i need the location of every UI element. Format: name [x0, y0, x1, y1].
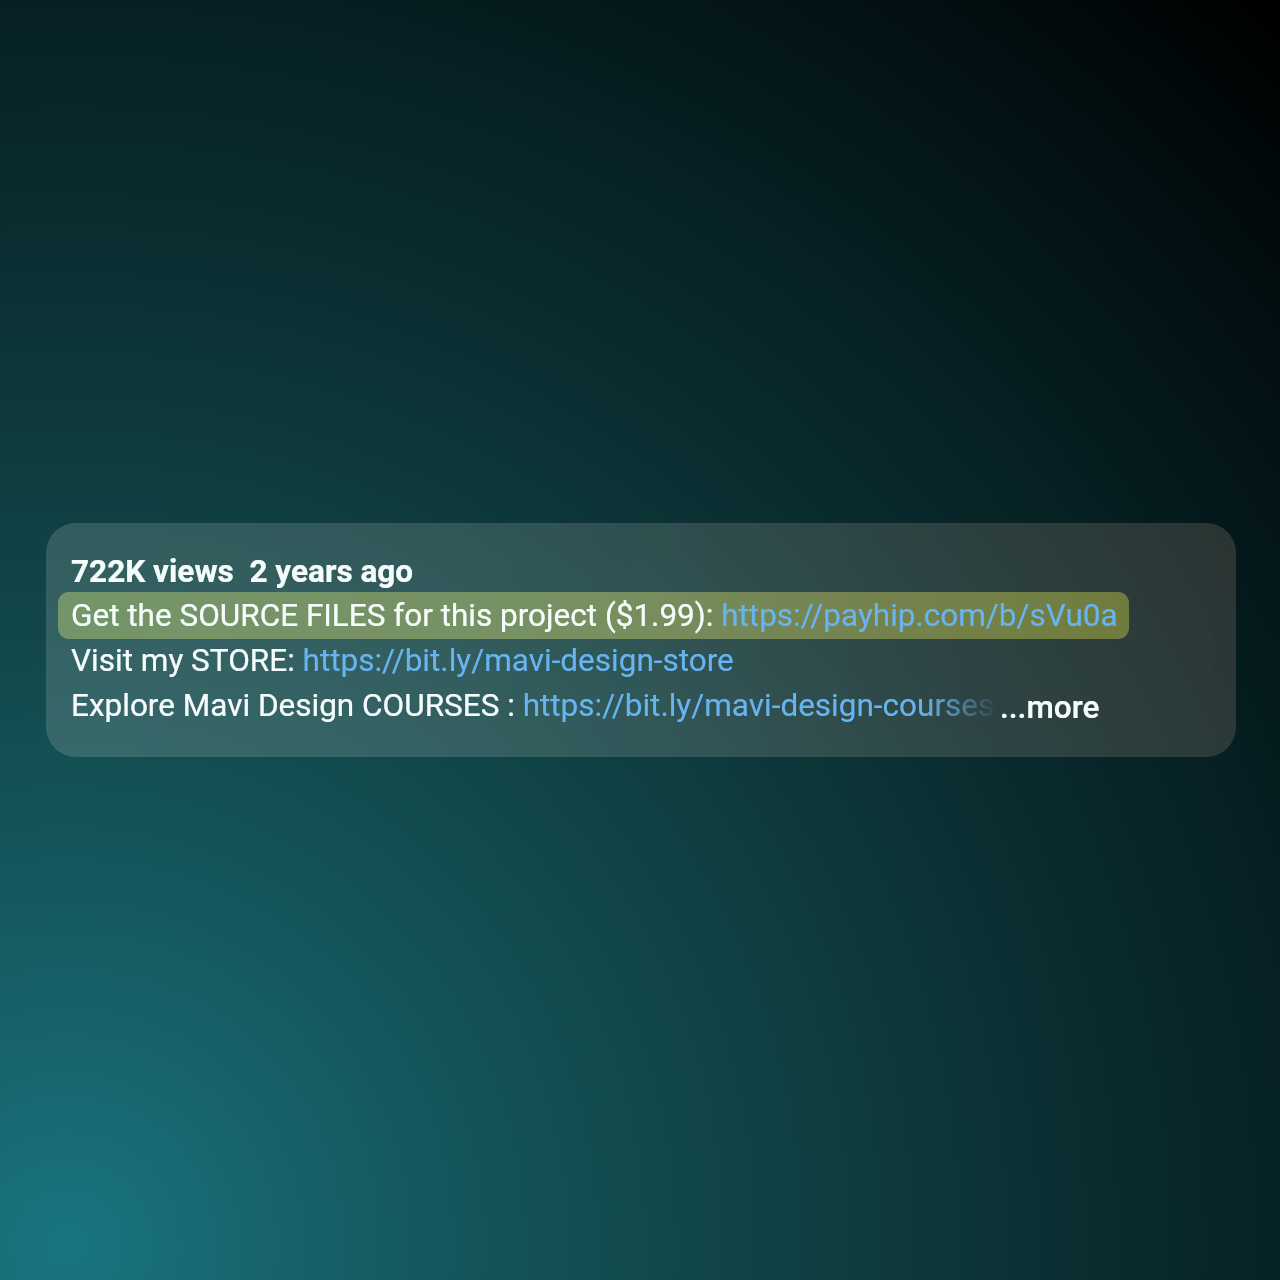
- button[interactable]: 722K views 2 years ago: [46, 523, 1236, 757]
- staticText: Explore Mavi Design COURSES : https://bi…: [71, 687, 995, 724]
- button[interactable]: Get the SOURCE FILES for this project ($…: [71, 597, 1118, 634]
- button[interactable]: Explore Mavi Design COURSES : https://bi…: [71, 687, 995, 724]
- staticText: Visit my STORE: https://bit.ly/mavi-desi…: [71, 642, 734, 679]
- button[interactable]: 722K views 2 years ago: [71, 553, 414, 590]
- button[interactable]: ...more: [1000, 689, 1100, 726]
- button[interactable]: Visit my STORE: https://bit.ly/mavi-desi…: [71, 642, 734, 679]
- staticText: Get the SOURCE FILES for this project ($…: [71, 597, 1118, 634]
- staticText: ...more: [1000, 689, 1100, 726]
- staticText: 722K views 2 years ago: [71, 553, 414, 590]
